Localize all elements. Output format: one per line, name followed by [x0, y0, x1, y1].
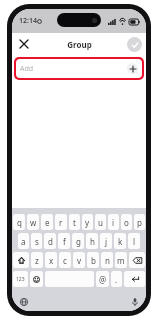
staticText: a: [21, 236, 26, 247]
staticText: .: [115, 274, 118, 285]
button[interactable]: Shift: [13, 252, 29, 268]
button[interactable]: f: [58, 233, 70, 249]
button[interactable]: c: [59, 252, 71, 268]
button[interactable]: t: [69, 214, 80, 230]
button[interactable]: .: [111, 271, 122, 287]
button[interactable]: g: [72, 233, 84, 249]
button[interactable]: Return: [124, 271, 145, 287]
staticText: y: [85, 217, 90, 228]
staticText: Group: [67, 39, 92, 50]
button[interactable]: o: [121, 214, 132, 230]
button[interactable]: p: [134, 214, 145, 230]
staticText: c: [63, 255, 67, 266]
button[interactable]: e: [41, 214, 53, 230]
button[interactable]: Add: [16, 59, 142, 78]
button[interactable]: k: [114, 233, 126, 249]
button[interactable]: d: [44, 233, 56, 249]
staticText: p: [137, 217, 142, 228]
staticText: b: [91, 255, 96, 266]
staticText: t: [73, 217, 76, 228]
staticText: @: [99, 274, 107, 285]
button[interactable]: v: [73, 252, 85, 268]
staticText: h: [90, 236, 95, 247]
staticText: m: [117, 255, 125, 266]
button[interactable]: Close: [16, 36, 32, 52]
button[interactable]: a: [18, 233, 29, 249]
staticText: z: [35, 255, 39, 266]
staticText: n: [105, 255, 110, 266]
staticText: g: [76, 236, 81, 247]
button[interactable]: j: [100, 233, 112, 249]
staticText: s: [35, 236, 39, 247]
staticText: j: [105, 236, 108, 247]
staticText: e: [45, 217, 50, 228]
staticText: i: [112, 217, 115, 228]
button[interactable]: r: [55, 214, 67, 230]
staticText: o: [124, 217, 129, 228]
button[interactable]: Emoji: [30, 271, 43, 287]
button[interactable]: Add member: [127, 63, 138, 74]
button[interactable]: y: [82, 214, 93, 230]
staticText: x: [49, 255, 54, 266]
button[interactable]: z: [31, 252, 43, 268]
button[interactable]: 123: [13, 271, 28, 287]
button[interactable]: Change keyboard: [17, 295, 30, 308]
staticText: 12:14: [19, 16, 37, 26]
staticText: k: [118, 236, 123, 247]
button[interactable]: w: [27, 214, 39, 230]
button[interactable]: n: [101, 252, 113, 268]
button[interactable]: u: [95, 214, 106, 230]
staticText: f: [63, 236, 66, 247]
staticText: v: [77, 255, 82, 266]
button[interactable]: m: [115, 252, 127, 268]
button[interactable]: l: [128, 233, 140, 249]
staticText: w: [30, 217, 37, 228]
button[interactable]: i: [108, 214, 119, 230]
button[interactable]: x: [45, 252, 57, 268]
button[interactable]: q: [13, 214, 25, 230]
staticText: d: [48, 236, 53, 247]
button[interactable]: Confirm: [127, 37, 142, 52]
button[interactable]: s: [31, 233, 42, 249]
button[interactable]: Backspace: [129, 252, 145, 268]
button[interactable]: @: [96, 271, 109, 287]
staticText: r: [59, 217, 63, 228]
button[interactable]: h: [86, 233, 98, 249]
button[interactable]: b: [87, 252, 99, 268]
staticText: u: [98, 217, 103, 228]
staticText: Add: [20, 64, 127, 74]
staticText: l: [133, 236, 136, 247]
button[interactable]: Dictate: [128, 295, 141, 308]
staticText: q: [17, 217, 22, 228]
staticText: 123: [16, 276, 25, 283]
